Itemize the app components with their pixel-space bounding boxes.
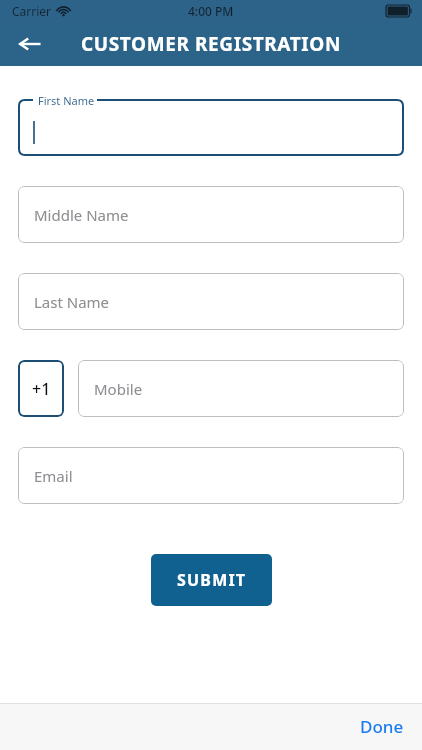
staticText: Email <box>34 466 73 486</box>
button[interactable]: Done <box>342 705 422 748</box>
staticText: Done <box>360 715 404 738</box>
button[interactable]: Last Name <box>18 273 404 330</box>
button[interactable]: SUBMIT <box>151 554 272 606</box>
button[interactable]: +1 <box>18 360 64 417</box>
button[interactable]: Email <box>18 447 404 504</box>
staticText: 4:00 PM <box>188 3 234 19</box>
button[interactable]: Mobile <box>78 360 404 417</box>
staticText: Mobile <box>94 379 143 399</box>
staticText: Carrier <box>12 3 52 19</box>
button[interactable]: Middle Name <box>18 186 404 243</box>
staticText: Last Name <box>34 292 110 312</box>
button[interactable]: First Name <box>18 99 404 156</box>
staticText: SUBMIT <box>177 569 247 591</box>
button[interactable]: Back <box>8 22 52 66</box>
staticText: Middle Name <box>34 205 129 225</box>
staticText: +1 <box>32 378 51 400</box>
staticText: First Name <box>38 93 95 108</box>
staticText: CUSTOMER REGISTRATION <box>81 31 341 57</box>
